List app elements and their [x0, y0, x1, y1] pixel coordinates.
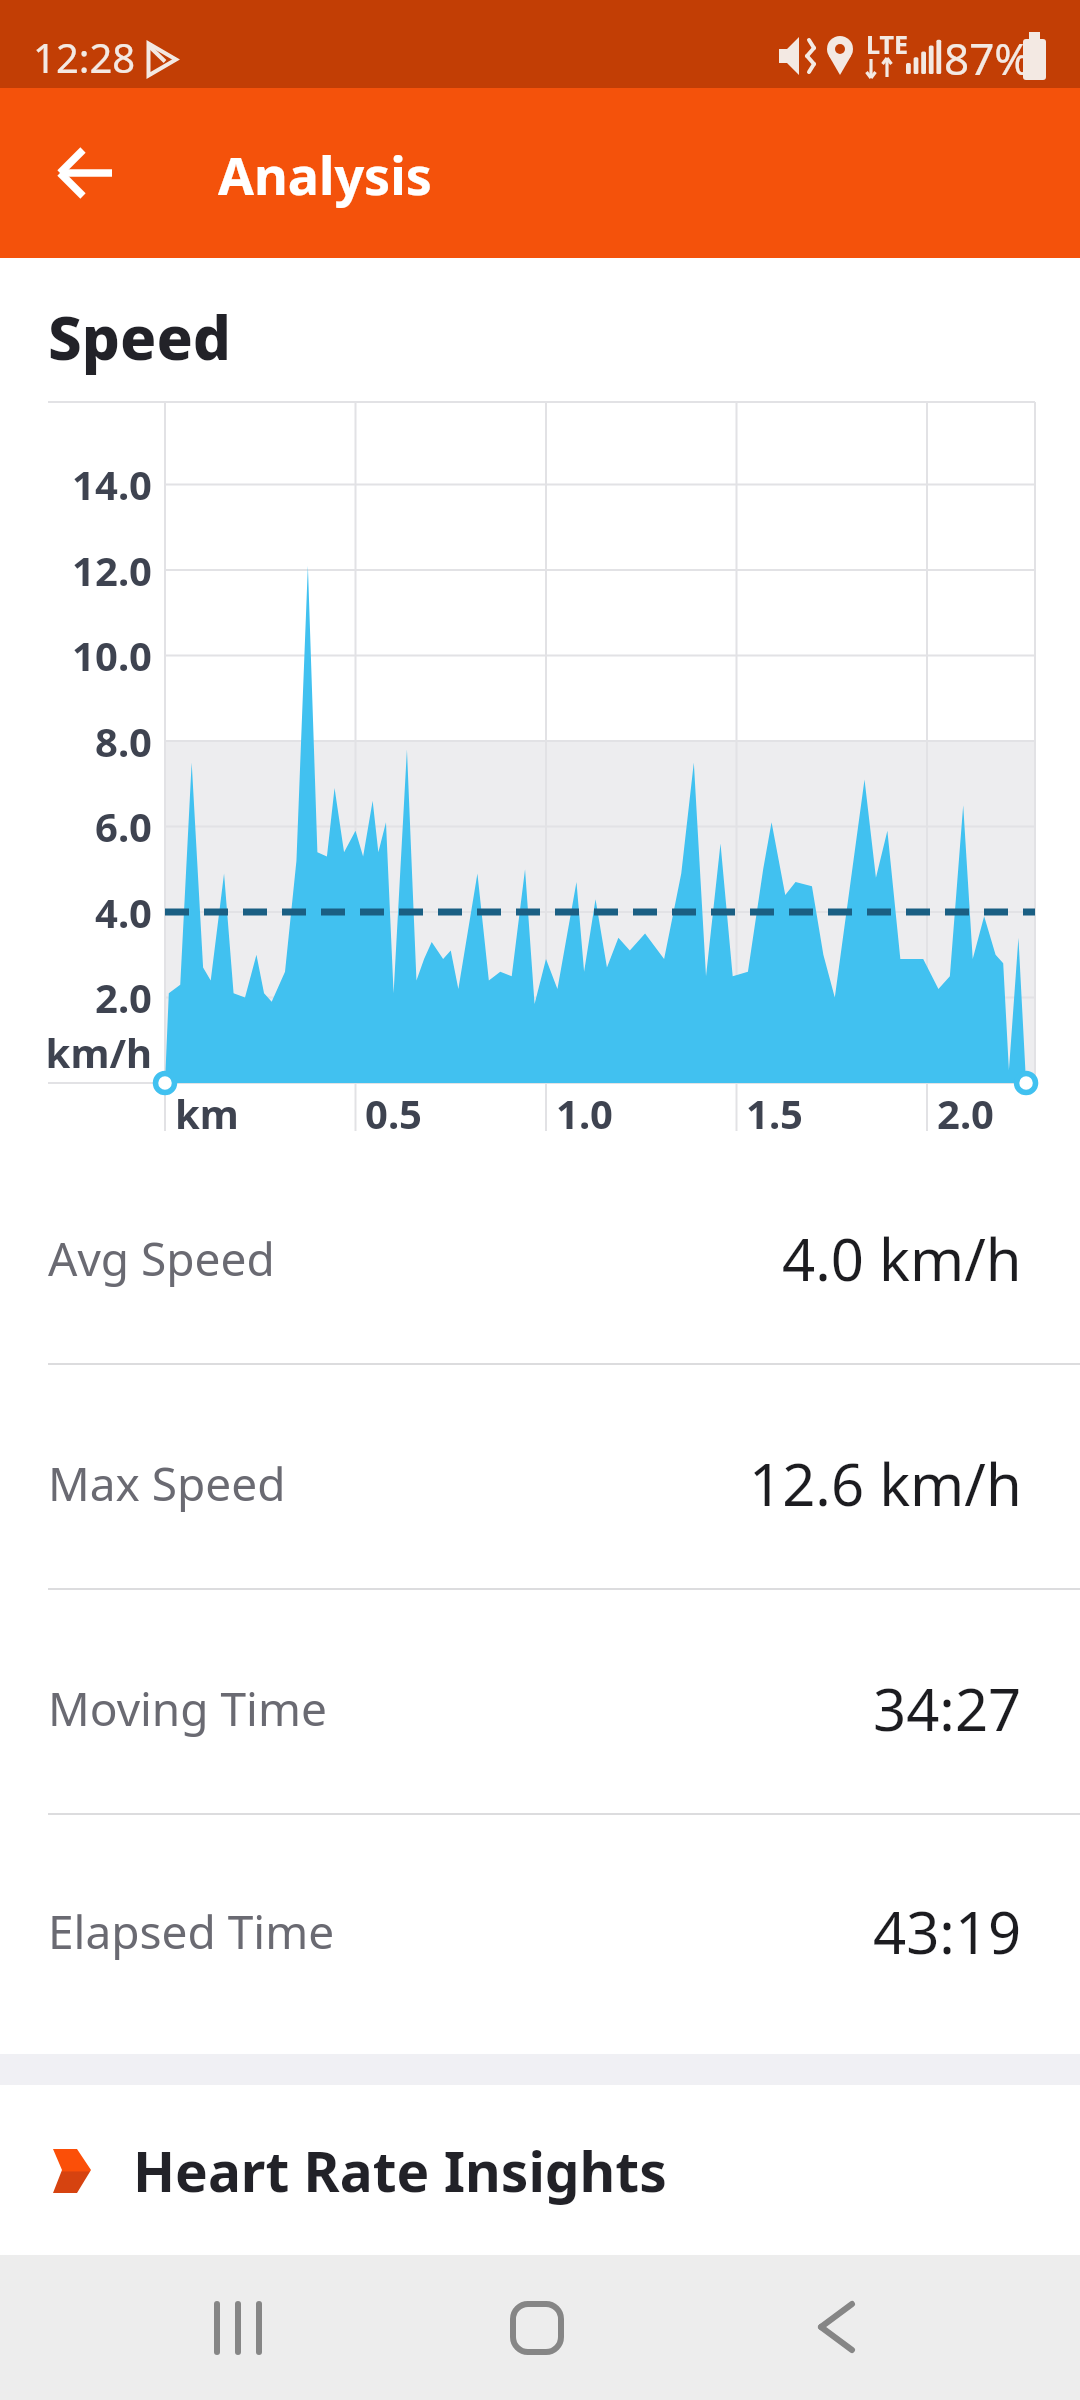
staticText: 14.0	[72, 457, 152, 511]
button[interactable]	[36, 128, 136, 218]
staticText: Heart Rate Insights	[133, 2133, 667, 2208]
button[interactable]: Max Speed	[0, 1373, 1080, 1593]
button[interactable]: Heart Rate Insights	[0, 2085, 1080, 2255]
button[interactable]: Moving Time	[0, 1598, 1080, 1818]
staticText: Speed	[48, 296, 232, 378]
staticText: 12:28	[33, 30, 136, 84]
staticText: 10.0	[72, 628, 152, 682]
button[interactable]	[781, 2275, 893, 2380]
staticText: 2.0	[95, 970, 152, 1024]
staticText: 12.6 km/h	[749, 1444, 1022, 1523]
staticText: 43:19	[873, 1892, 1022, 1971]
staticText: 4.0 km/h	[782, 1219, 1022, 1298]
staticText: 87%	[944, 28, 1031, 88]
button[interactable]: Avg Speed	[0, 1148, 1080, 1368]
button[interactable]	[481, 2275, 593, 2380]
staticText: Analysis	[218, 139, 432, 210]
staticText: 6.0	[95, 799, 152, 853]
button[interactable]: Elapsed Time	[0, 1821, 1080, 2041]
staticText: 1.0	[556, 1086, 613, 1140]
staticText: 34:27	[873, 1669, 1022, 1748]
staticText: 4.0	[95, 885, 152, 939]
staticText: Moving Time	[48, 1677, 327, 1740]
staticText: 1.5	[746, 1086, 803, 1140]
staticText: 0.5	[365, 1086, 422, 1140]
staticText: 2.0	[937, 1086, 994, 1140]
staticText: LTE	[866, 27, 908, 61]
staticText: km/h	[45, 1025, 152, 1079]
staticText: km	[175, 1086, 239, 1140]
staticText: Max Speed	[48, 1452, 286, 1515]
button[interactable]	[183, 2275, 295, 2380]
staticText: 8.0	[95, 714, 152, 768]
staticText: Avg Speed	[48, 1227, 275, 1290]
staticText: Elapsed Time	[48, 1900, 335, 1963]
staticText: 12.0	[72, 543, 152, 597]
